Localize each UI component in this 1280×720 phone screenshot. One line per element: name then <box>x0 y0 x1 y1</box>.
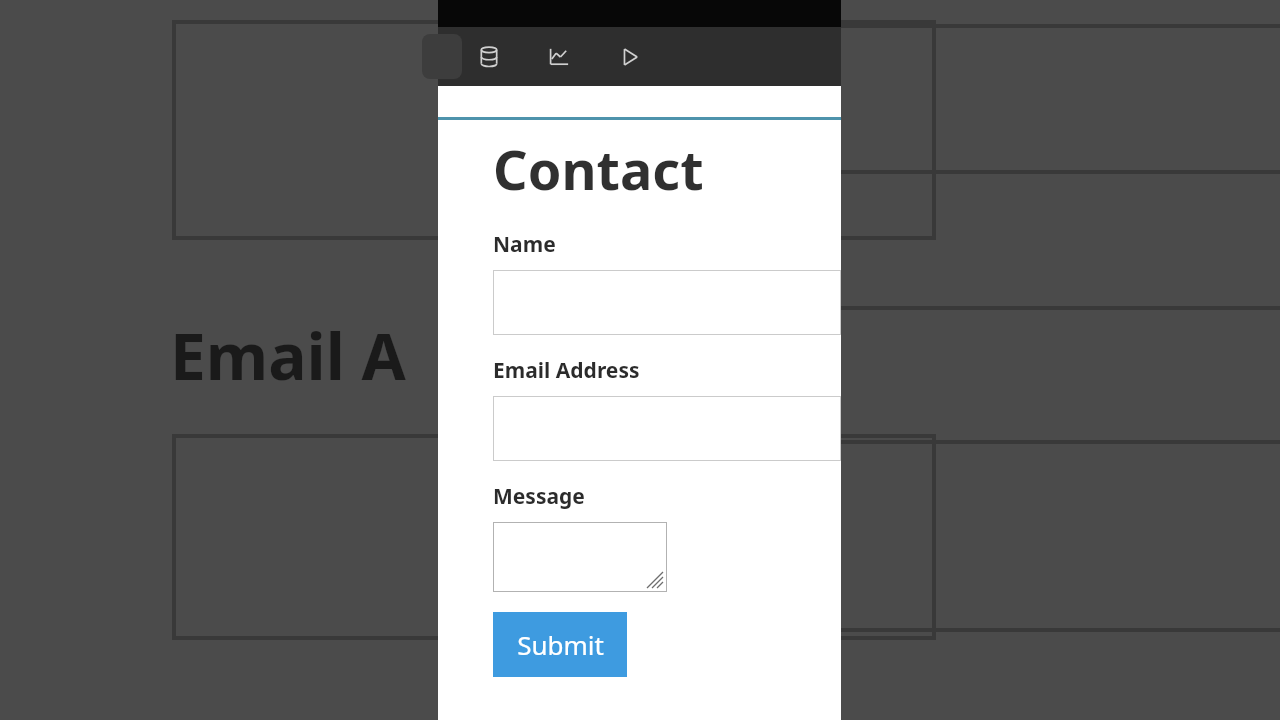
button[interactable]: Database <box>472 40 506 74</box>
staticText: Name <box>493 230 556 259</box>
staticText: Contact <box>493 132 704 206</box>
button[interactable]: Submit <box>493 612 627 677</box>
staticText: Email Address <box>493 356 640 385</box>
staticText: Email A <box>170 312 406 399</box>
button[interactable]: Chart <box>542 40 576 74</box>
button[interactable]: Run <box>613 40 647 74</box>
button[interactable]: Message text area <box>493 522 667 592</box>
button[interactable]: Text input <box>493 270 841 335</box>
staticText: Message <box>493 482 585 511</box>
button[interactable]: Text input <box>493 396 841 461</box>
staticText: Submit <box>517 627 604 662</box>
